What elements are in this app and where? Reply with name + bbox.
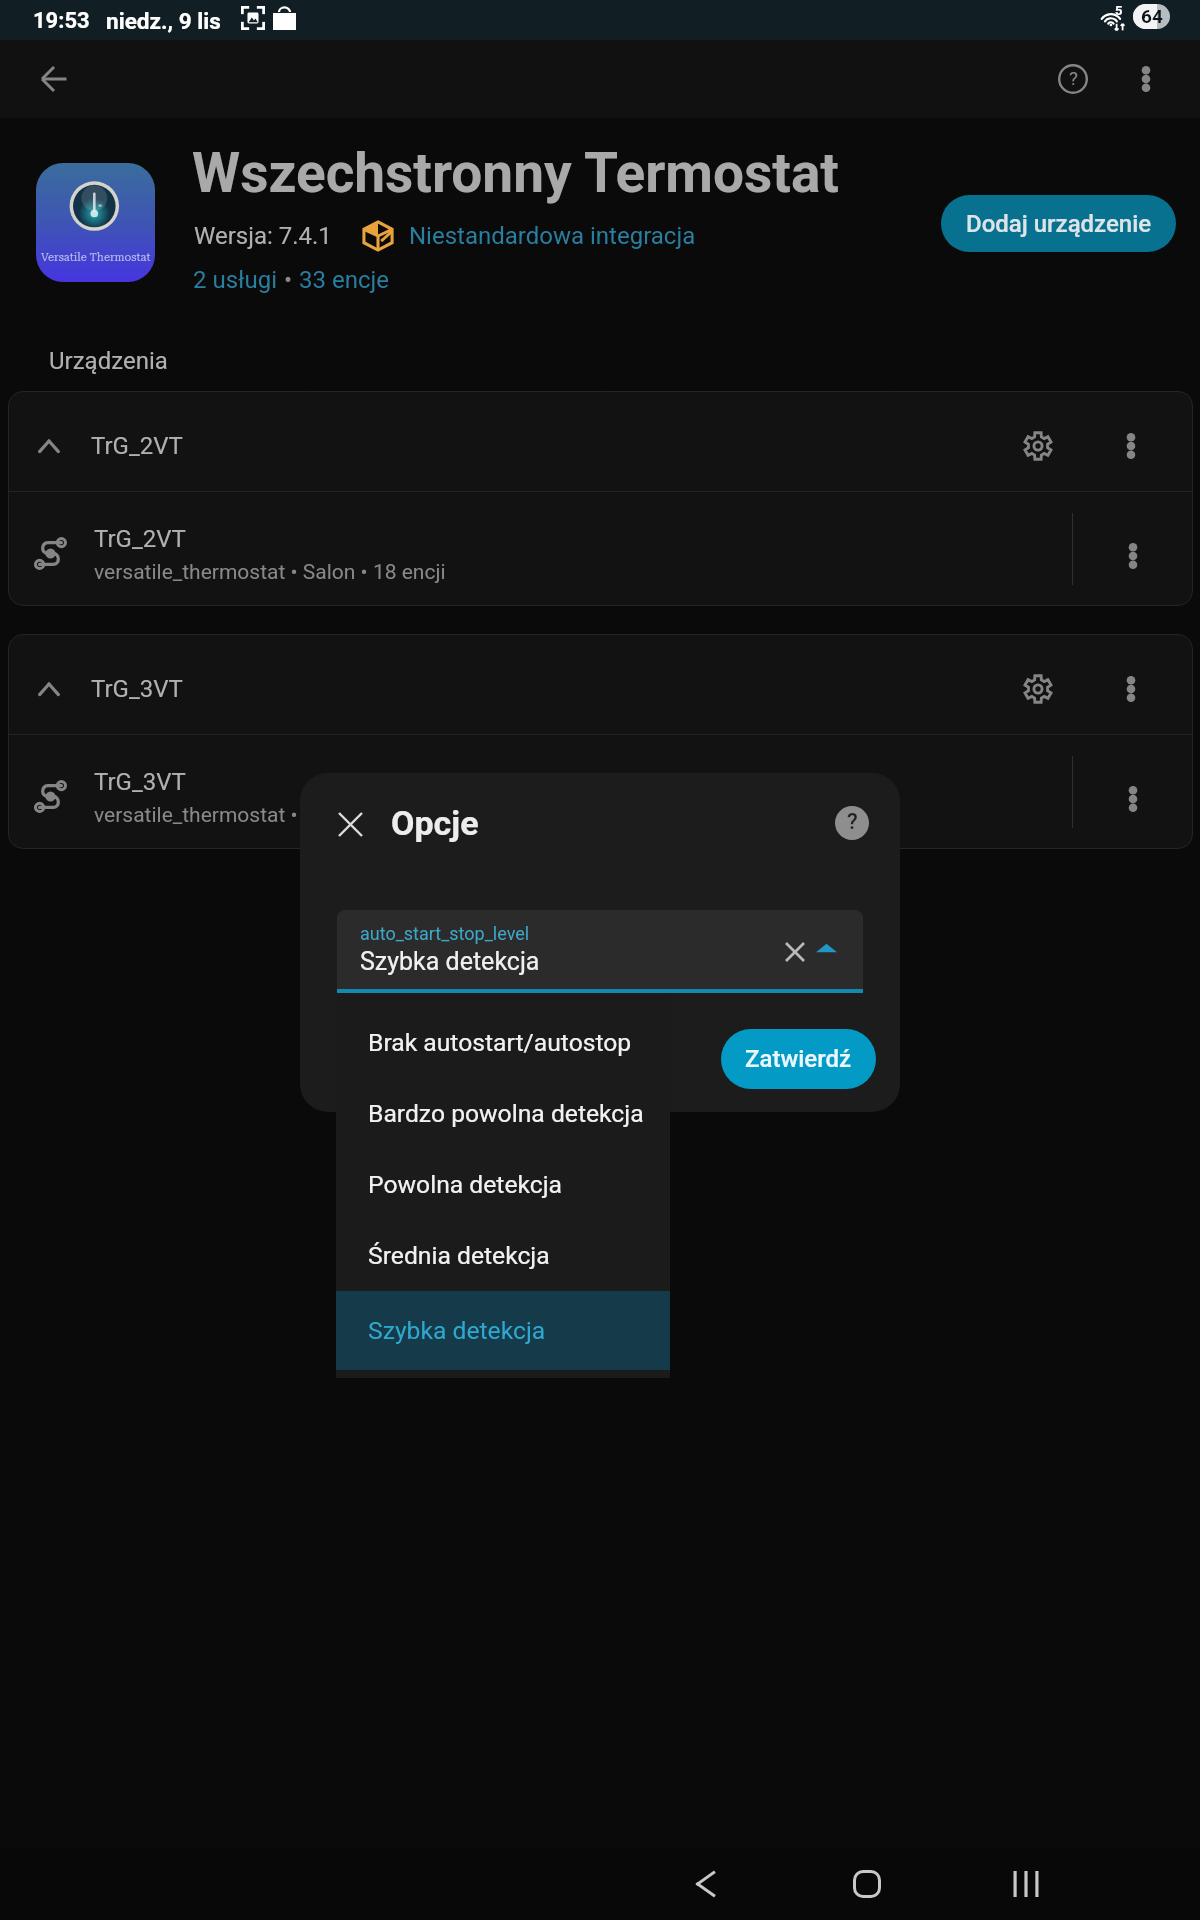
button[interactable]: More — [1073, 735, 1193, 849]
button[interactable]: Zatwierdź — [721, 1029, 876, 1089]
button[interactable]: TrG_3VT — [8, 735, 1193, 849]
staticText: versatile_thermostat • Salon • 18 encji — [94, 560, 446, 585]
staticText: Wersja: 7.4.1 — [194, 222, 332, 250]
staticText: • — [278, 266, 299, 294]
button[interactable]: More options — [1117, 50, 1175, 108]
staticText: Opcje — [391, 803, 479, 843]
button[interactable]: auto_start_stop_level — [337, 910, 863, 989]
button[interactable]: Recents — [966, 1848, 1086, 1920]
button[interactable]: Powolna detekcja — [336, 1149, 670, 1220]
staticText: Bardzo powolna detekcja — [368, 1099, 644, 1128]
button[interactable]: Szybka detekcja — [336, 1291, 670, 1370]
staticText: 64 — [1141, 5, 1163, 27]
button[interactable]: Back — [648, 1848, 768, 1920]
staticText: Średnia detekcja — [368, 1241, 550, 1270]
button[interactable]: Settings — [1003, 406, 1073, 476]
staticText: Versatile Thermostat — [41, 251, 151, 264]
staticText: Niestandardowa integracja — [409, 222, 696, 250]
staticText: Zatwierdź — [745, 1045, 852, 1073]
staticText: auto_start_stop_level — [360, 923, 530, 944]
button[interactable]: Help — [835, 806, 869, 840]
button[interactable]: Close — [320, 794, 378, 852]
button[interactable]: Bardzo powolna detekcja — [336, 1078, 670, 1149]
button[interactable]: TrG_2VT — [8, 492, 1193, 606]
button[interactable]: More — [1073, 492, 1193, 606]
button[interactable]: Settings — [1003, 649, 1073, 719]
staticText: Urządzenia — [49, 347, 168, 375]
staticText: 33 encje — [299, 266, 389, 294]
button[interactable]: More — [1096, 649, 1166, 719]
staticText: 5 — [1115, 3, 1123, 18]
button[interactable]: Clear — [772, 929, 818, 975]
staticText: Szybka detekcja — [360, 947, 540, 976]
button[interactable]: Dodaj urządzenie — [941, 195, 1176, 252]
button[interactable]: 33 encje — [299, 266, 389, 294]
button[interactable]: Brak autostart/autostop — [336, 1007, 670, 1078]
staticText: versatile_thermostat • Salon • 18 encji — [94, 803, 446, 828]
staticText: ? — [1069, 67, 1078, 89]
staticText: TrG_3VT — [94, 768, 186, 796]
button[interactable]: Collapse dropdown — [803, 927, 849, 973]
button[interactable]: TrG_2VT — [8, 391, 1193, 491]
button[interactable]: More — [1096, 406, 1166, 476]
button[interactable]: Średnia detekcja — [336, 1220, 670, 1291]
button[interactable]: Help — [1044, 50, 1102, 108]
button[interactable]: 2 usługi — [193, 266, 278, 294]
staticText: Dodaj urządzenie — [966, 210, 1152, 238]
staticText: 19:53 — [33, 8, 90, 34]
button[interactable]: Back — [24, 50, 82, 108]
staticText: TrG_3VT — [91, 675, 183, 703]
staticText: TrG_2VT — [91, 432, 183, 460]
staticText: Brak autostart/autostop — [368, 1028, 632, 1057]
button[interactable]: Home — [807, 1848, 927, 1920]
staticText: Wszechstronny Termostat — [192, 141, 839, 205]
staticText: TrG_2VT — [94, 525, 186, 553]
staticText: 2 usługi — [193, 266, 278, 294]
button[interactable]: TrG_3VT — [8, 634, 1193, 734]
staticText: niedz., 9 lis — [106, 8, 221, 34]
staticText: Powolna detekcja — [368, 1170, 563, 1199]
staticText: Szybka detekcja — [368, 1316, 546, 1345]
button[interactable]: Niestandardowa integracja — [409, 222, 696, 250]
staticText: ? — [847, 809, 858, 835]
